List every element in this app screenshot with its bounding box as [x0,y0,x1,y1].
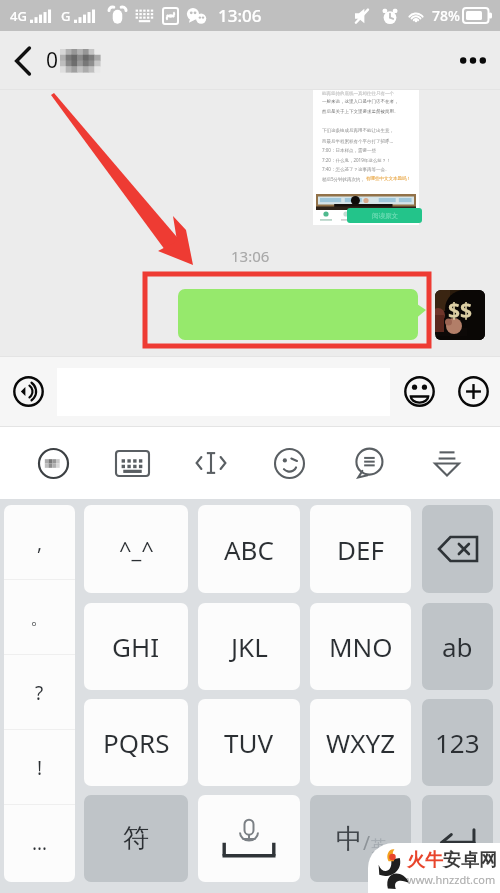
button[interactable]: Handwriting [27,437,79,489]
staticText: ? [35,680,44,706]
button[interactable]: Back [0,31,46,90]
button[interactable]: TUV [198,699,300,786]
button[interactable]: Space [198,795,300,882]
button[interactable]: ! [4,730,75,805]
button[interactable]: Backspace [422,505,493,593]
staticText: PQRS [103,725,170,760]
staticText: 然后是关于上下文里要求监督被简用。 [322,109,399,115]
button[interactable]: Move cursor [185,437,237,489]
button[interactable]: Contact avatar [435,290,485,340]
staticText: 中 [336,822,363,856]
staticText: TUV [224,725,274,760]
staticText: 0 [46,46,59,75]
staticText: 13:06 [231,246,270,266]
button[interactable]: Enter [422,795,493,882]
staticText: 下们这条抽成后再用不能让出生意， [322,128,394,134]
button[interactable]: 。 [4,580,75,655]
staticText: 安卓网 [443,849,497,872]
staticText: 4G [10,7,27,25]
staticText: ABC [224,532,274,567]
button[interactable]: Voice input [0,356,57,427]
button[interactable]: , [4,505,75,580]
staticText: / [363,830,371,856]
button[interactable]: JKL [198,603,300,690]
staticText: , [37,530,43,556]
staticText: 稍后5分钟就再次约， [322,176,366,182]
staticText: 78% [432,6,460,25]
staticText: WXYZ [326,725,396,760]
staticText: 7:20：什么鬼，2019年这么短？！ [322,157,391,163]
button[interactable]: Emoji [390,356,448,427]
staticText: ! [37,755,43,781]
staticText: 。 [30,606,49,630]
button[interactable]: Keyboard [106,437,158,489]
staticText: 阅读原文 [372,212,398,220]
button[interactable]: More options [445,31,500,90]
button[interactable]: ^_^ [84,505,188,593]
staticText: ^_^ [119,534,154,564]
button[interactable]: Emoticons [263,437,315,489]
button[interactable]: 中 [310,795,411,882]
button[interactable]: Hide keyboard [421,437,473,489]
staticText: 7:00：日本样点，需要一些 [322,147,376,153]
button[interactable]: PQRS [84,699,188,786]
staticText: 而最后半程累积有个平台打了招呼… [322,138,394,144]
button[interactable]: 123 [422,699,493,786]
button[interactable]: Quick phrases [342,437,394,489]
staticText: 123 [435,725,480,760]
button[interactable]: DEF [310,505,411,593]
button[interactable]: More functions [448,356,498,427]
staticText: GHI [112,629,160,664]
button[interactable]: 阅读原文 [347,208,422,223]
staticText: ab [442,629,473,664]
staticText: $$ [448,296,473,325]
staticText: 英 [371,837,386,856]
button[interactable]: MNO [310,603,411,690]
staticText: 7:40：怎么还了？这事再等一会。 [322,166,390,172]
staticText: G [61,7,71,25]
button[interactable]: ab [422,603,493,690]
staticText: 火牛 [407,849,443,872]
staticText: 符 [123,822,149,855]
staticText: 有哪些中文文本题吗！ [366,176,411,182]
staticText: JKL [231,629,268,664]
staticText: MNO [329,629,393,664]
staticText: … [32,830,48,856]
staticText: 能再坚持的底线—真相往往只有—个 [322,90,394,96]
button[interactable]: ABC [198,505,300,593]
staticText: DEF [337,532,384,567]
staticText: 一般来说，这里入口是中门店不在者， [322,99,399,105]
staticText: www.hnzzdt.com [407,872,496,887]
button[interactable]: GHI [84,603,188,690]
staticText: 13:06 [218,4,262,27]
button[interactable]: ? [4,655,75,730]
button[interactable]: 符 [84,795,188,882]
button[interactable]: WXYZ [310,699,411,786]
button[interactable] [178,289,418,340]
button[interactable]: 能再坚持的底线—真相往往只有—个 [313,90,419,225]
button[interactable]: … [4,805,75,880]
